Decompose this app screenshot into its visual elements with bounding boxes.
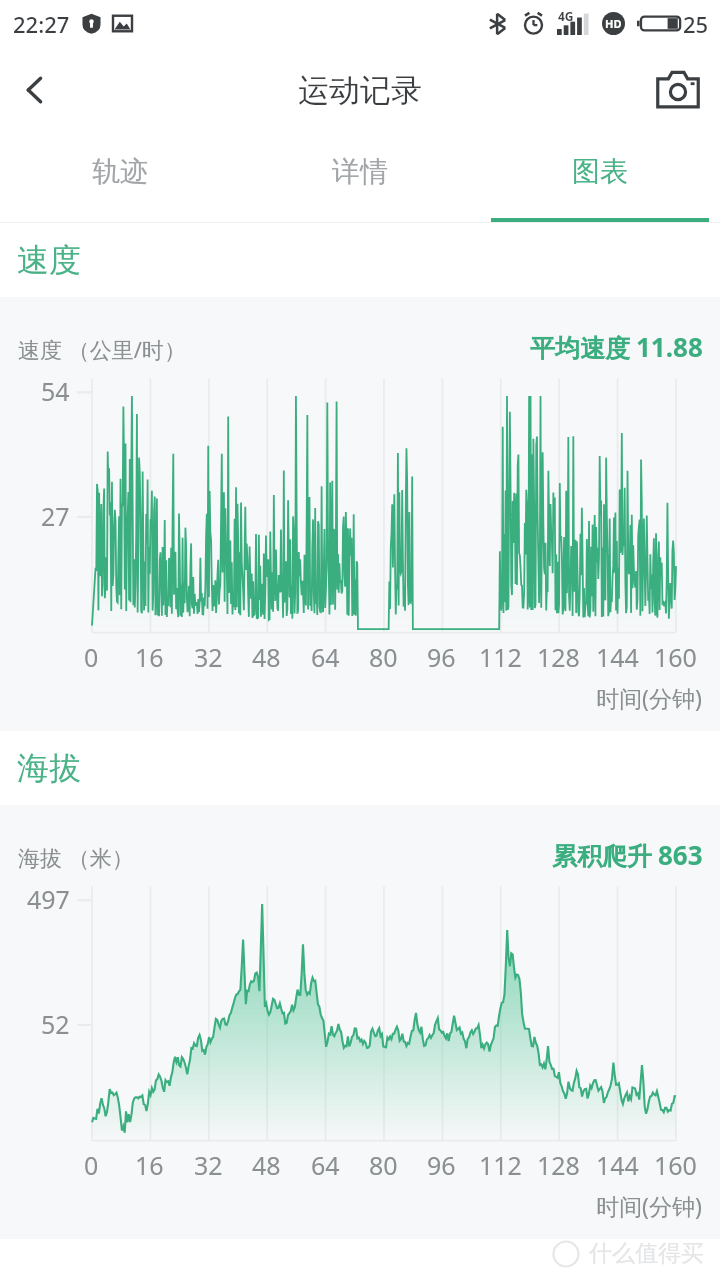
staticText: 96: [427, 640, 456, 674]
staticText: 32: [194, 640, 223, 674]
staticText: 平均速度: [530, 333, 630, 364]
staticText: 累积爬升: [552, 841, 652, 872]
staticText: 112: [479, 640, 522, 674]
staticText: 144: [596, 1148, 639, 1182]
staticText: 图表: [572, 154, 628, 189]
staticText: 25: [683, 9, 709, 39]
staticText: 80: [369, 1148, 398, 1182]
staticText: 轨迹: [92, 154, 148, 189]
staticText: 海拔 （米）: [18, 842, 134, 872]
staticText: 运动记录: [298, 71, 422, 110]
staticText: 64: [311, 1148, 340, 1182]
staticText: 速度: [17, 240, 81, 280]
button[interactable]: 轨迹: [0, 133, 240, 222]
staticText: 144: [596, 640, 639, 674]
button[interactable]: Back: [0, 55, 70, 125]
staticText: 64: [311, 640, 340, 674]
staticText: 时间(分钟): [596, 1190, 702, 1221]
staticText: 160: [654, 640, 697, 674]
staticText: 128: [537, 640, 580, 674]
staticText: 863: [658, 837, 703, 872]
staticText: 时间(分钟): [596, 682, 702, 713]
button[interactable]: 图表: [480, 133, 720, 222]
staticText: 96: [427, 1148, 456, 1182]
staticText: 52: [41, 1007, 70, 1041]
staticText: 54: [41, 374, 70, 408]
staticText: 0: [84, 1148, 99, 1182]
staticText: 4G: [558, 8, 574, 24]
staticText: HD: [605, 16, 622, 31]
staticText: 22:27: [13, 9, 70, 39]
staticText: 什么值得买: [589, 1239, 704, 1268]
staticText: 11.88: [636, 329, 703, 364]
staticText: 海拔: [17, 748, 81, 788]
staticText: 详情: [332, 154, 388, 189]
staticText: 速度 （公里/时）: [18, 334, 186, 364]
staticText: 48: [252, 1148, 281, 1182]
staticText: 128: [537, 1148, 580, 1182]
staticText: 48: [252, 640, 281, 674]
staticText: 112: [479, 1148, 522, 1182]
staticText: 32: [194, 1148, 223, 1182]
staticText: 0: [84, 640, 99, 674]
staticText: 160: [654, 1148, 697, 1182]
staticText: 497: [27, 882, 70, 916]
staticText: 27: [41, 499, 70, 533]
staticText: 16: [135, 1148, 164, 1182]
staticText: 16: [135, 640, 164, 674]
button[interactable]: Camera: [648, 60, 708, 120]
button[interactable]: 详情: [240, 133, 480, 222]
staticText: 80: [369, 640, 398, 674]
